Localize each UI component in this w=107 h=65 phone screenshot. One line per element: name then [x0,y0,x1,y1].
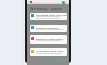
button[interactable]: Community credit union [30,48,67,56]
staticText: Financial institution [36,26,59,29]
button[interactable]: Regional private branch [30,35,67,44]
button[interactable]: Financial institution [30,25,67,32]
staticText: Worldwide major bank office [36,13,67,16]
staticText: Sed ut perspiciatis unde [36,17,60,20]
button[interactable]: Bank directory · Locations [27,4,69,11]
button[interactable]: Worldwide major bank office [30,13,67,20]
staticText: Nullam quis ante etiam sit [36,39,62,42]
staticText: Aenean leo ligula porttitor [36,52,62,55]
staticText: Quisque placerat tempus [36,15,61,18]
staticText: Donec vitae sapien ut libero [36,28,64,31]
staticText: Bank directory · Locations [30,7,63,10]
staticText: Community credit union [36,49,64,52]
staticText: Regional private branch [36,37,64,40]
button[interactable]: Profile [62,1,65,4]
